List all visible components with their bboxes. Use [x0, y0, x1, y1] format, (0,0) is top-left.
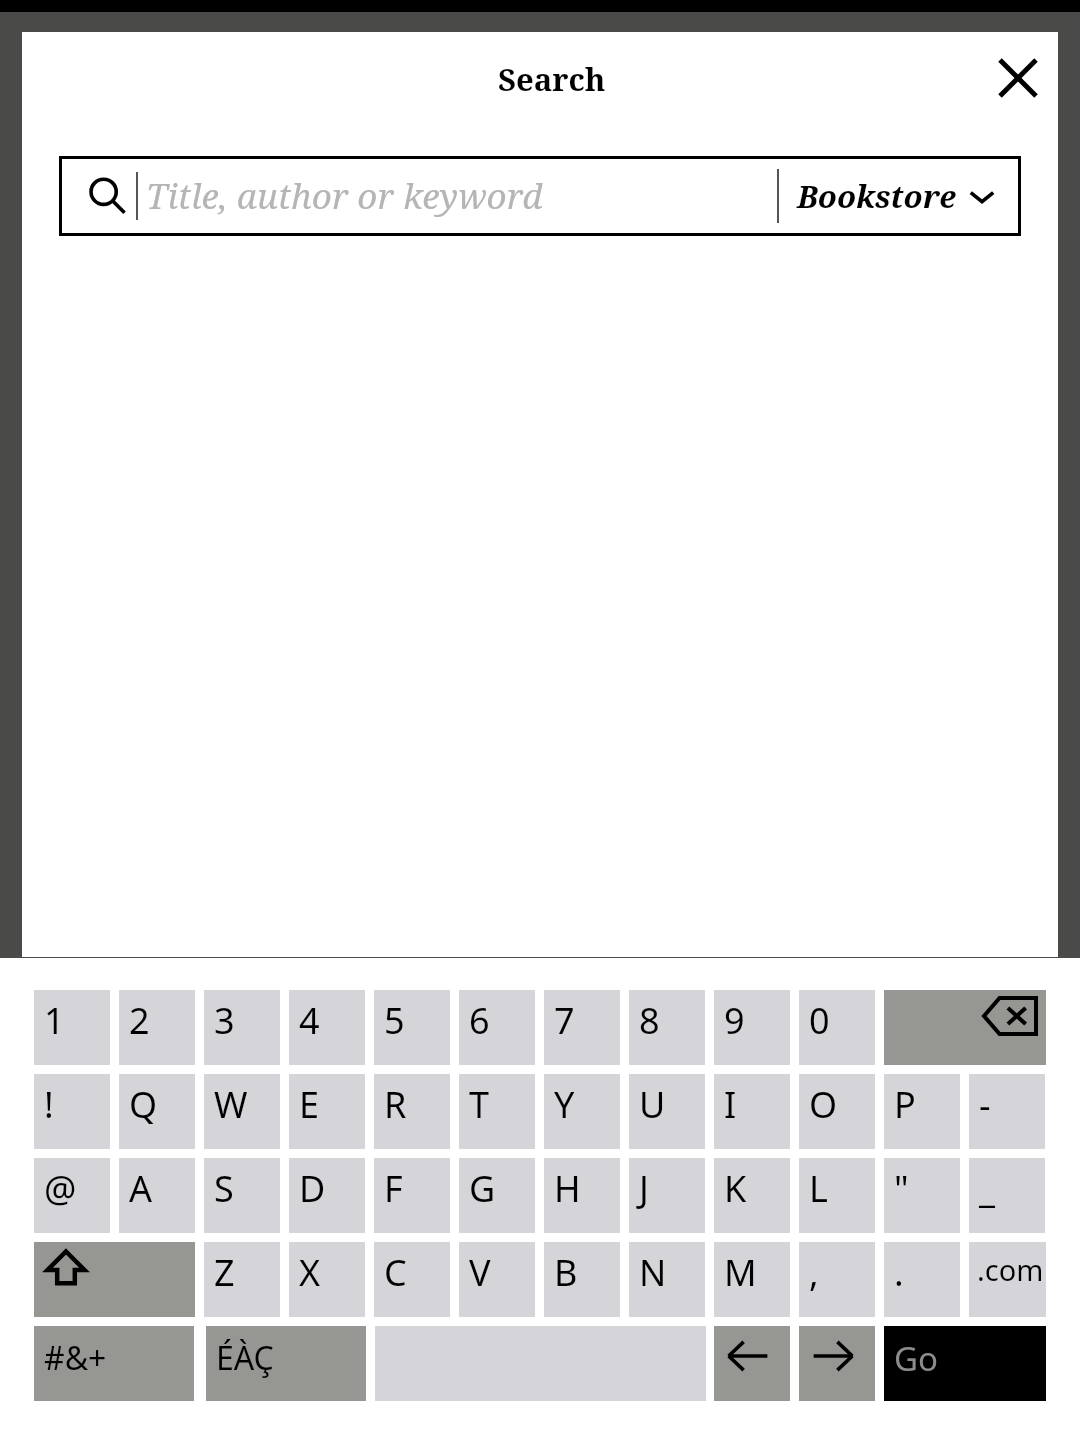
- staticText: -: [979, 1080, 991, 1129]
- button[interactable]: ÉÀÇ: [206, 1326, 366, 1401]
- button[interactable]: !: [34, 1074, 110, 1149]
- staticText: 2: [129, 996, 150, 1045]
- staticText: Q: [129, 1080, 158, 1129]
- staticText: @: [44, 1164, 77, 1213]
- staticText: R: [384, 1080, 407, 1129]
- staticText: W: [214, 1080, 248, 1129]
- staticText: M: [724, 1248, 757, 1297]
- button[interactable]: -: [969, 1074, 1045, 1149]
- button[interactable]: 3: [204, 990, 280, 1065]
- button[interactable]: @: [34, 1158, 110, 1233]
- staticText: F: [384, 1164, 403, 1213]
- staticText: P: [894, 1080, 916, 1129]
- staticText: ": [894, 1164, 909, 1213]
- button[interactable]: U: [629, 1074, 705, 1149]
- staticText: #&+: [44, 1336, 107, 1380]
- staticText: C: [384, 1248, 407, 1297]
- button[interactable]: J: [629, 1158, 705, 1233]
- button[interactable]: F: [374, 1158, 450, 1233]
- staticText: K: [724, 1164, 747, 1213]
- staticText: U: [639, 1080, 666, 1129]
- button[interactable]: 1: [34, 990, 110, 1065]
- staticText: 8: [639, 996, 660, 1045]
- button[interactable]: ": [884, 1158, 960, 1233]
- button[interactable]: .: [884, 1242, 960, 1317]
- button[interactable]: 7: [544, 990, 620, 1065]
- staticText: X: [299, 1248, 321, 1297]
- button[interactable]: Search: [80, 169, 134, 223]
- staticText: Title, author or keyword: [146, 172, 543, 220]
- staticText: L: [809, 1164, 828, 1213]
- button[interactable]: A: [119, 1158, 195, 1233]
- button[interactable]: 6: [459, 990, 535, 1065]
- button[interactable]: 9: [714, 990, 790, 1065]
- button[interactable]: L: [799, 1158, 875, 1233]
- button[interactable]: I: [714, 1074, 790, 1149]
- button[interactable]: V: [459, 1242, 535, 1317]
- staticText: ÉÀÇ: [216, 1336, 274, 1380]
- staticText: ,: [809, 1248, 819, 1297]
- button[interactable]: 4: [289, 990, 365, 1065]
- button[interactable]: E: [289, 1074, 365, 1149]
- button[interactable]: C: [374, 1242, 450, 1317]
- staticText: G: [469, 1164, 496, 1213]
- button[interactable]: 2: [119, 990, 195, 1065]
- staticText: 6: [469, 996, 490, 1045]
- staticText: I: [724, 1080, 737, 1129]
- staticText: _: [979, 1164, 995, 1213]
- button[interactable]: T: [459, 1074, 535, 1149]
- staticText: 4: [299, 996, 320, 1045]
- staticText: 3: [214, 996, 235, 1045]
- staticText: S: [214, 1164, 234, 1213]
- button[interactable]: W: [204, 1074, 280, 1149]
- staticText: T: [469, 1080, 490, 1129]
- button[interactable]: Backspace: [884, 990, 1046, 1065]
- button[interactable]: N: [629, 1242, 705, 1317]
- button[interactable]: Go: [884, 1326, 1046, 1401]
- staticText: !: [44, 1080, 54, 1129]
- button[interactable]: Move cursor left: [714, 1326, 790, 1401]
- button[interactable]: R: [374, 1074, 450, 1149]
- button[interactable]: Close search: [984, 44, 1052, 112]
- staticText: B: [554, 1248, 578, 1297]
- button[interactable]: Z: [204, 1242, 280, 1317]
- button[interactable]: Q: [119, 1074, 195, 1149]
- button[interactable]: G: [459, 1158, 535, 1233]
- button[interactable]: ,: [799, 1242, 875, 1317]
- button[interactable]: _: [969, 1158, 1045, 1233]
- button[interactable]: D: [289, 1158, 365, 1233]
- staticText: N: [639, 1248, 667, 1297]
- staticText: Bookstore: [797, 175, 956, 217]
- button[interactable]: .com: [969, 1242, 1046, 1317]
- button[interactable]: B: [544, 1242, 620, 1317]
- staticText: 5: [384, 996, 405, 1045]
- staticText: O: [809, 1080, 838, 1129]
- button[interactable]: 5: [374, 990, 450, 1065]
- staticText: Search: [498, 58, 606, 100]
- button[interactable]: 8: [629, 990, 705, 1065]
- button[interactable]: P: [884, 1074, 960, 1149]
- staticText: .com: [977, 1250, 1044, 1289]
- button[interactable]: #&+: [34, 1326, 194, 1401]
- staticText: Y: [554, 1080, 575, 1129]
- button[interactable]: M: [714, 1242, 790, 1317]
- staticText: .: [894, 1248, 904, 1297]
- button[interactable]: Y: [544, 1074, 620, 1149]
- staticText: H: [554, 1164, 581, 1213]
- staticText: 9: [724, 996, 745, 1045]
- button[interactable]: S: [204, 1158, 280, 1233]
- button[interactable]: X: [289, 1242, 365, 1317]
- staticText: 1: [44, 996, 65, 1045]
- staticText: A: [129, 1164, 153, 1213]
- staticText: Go: [894, 1336, 938, 1381]
- staticText: V: [469, 1248, 491, 1297]
- button[interactable]: Move cursor right: [799, 1326, 875, 1401]
- button[interactable]: K: [714, 1158, 790, 1233]
- button[interactable]: Shift: [34, 1242, 195, 1317]
- staticText: E: [299, 1080, 320, 1129]
- button[interactable]: Bookstore: [777, 159, 1018, 233]
- button[interactable]: H: [544, 1158, 620, 1233]
- button[interactable]: O: [799, 1074, 875, 1149]
- button[interactable]: 0: [799, 990, 875, 1065]
